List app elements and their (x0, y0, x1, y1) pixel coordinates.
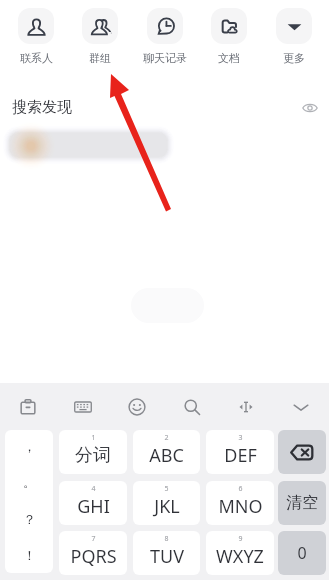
button[interactable]: 1 (59, 430, 127, 474)
staticText: JKL (154, 494, 180, 519)
button[interactable]: 4 (59, 481, 127, 525)
button[interactable]: 群组 (71, 8, 129, 65)
button[interactable]: 9 (206, 531, 274, 575)
button[interactable]: Backspace (278, 430, 326, 474)
button[interactable]: 清空 (278, 481, 326, 525)
staticText: ？ (23, 511, 36, 527)
staticText: WXYZ (216, 544, 264, 569)
staticText: 文档 (218, 51, 240, 65)
staticText: 4 (91, 484, 96, 494)
staticText: 3 (238, 433, 243, 443)
button[interactable]: 2 (133, 430, 200, 474)
button[interactable]: 6 (206, 481, 274, 525)
staticText: ABC (149, 443, 184, 468)
staticText: 7 (91, 534, 96, 544)
button[interactable]: Search (173, 388, 211, 426)
staticText: 联系人 (20, 51, 53, 65)
button[interactable]: Toggle search discovery (302, 100, 318, 116)
staticText: ， (23, 438, 36, 454)
staticText: 6 (238, 484, 243, 494)
button[interactable]: 文档 (200, 8, 258, 65)
button[interactable]: 3 (206, 430, 274, 474)
button[interactable]: 8 (133, 531, 200, 575)
staticText: 8 (164, 534, 169, 544)
staticText: 搜索发现 (12, 98, 72, 117)
staticText: TUV (150, 544, 184, 569)
staticText: 聊天记录 (143, 51, 187, 65)
staticText: 9 (238, 534, 243, 544)
staticText: PQRS (70, 544, 117, 569)
button[interactable]: Clipboard (9, 388, 47, 426)
staticText: GHI (77, 494, 110, 519)
staticText: 。 (23, 474, 36, 490)
button[interactable]: ， (5, 430, 53, 573)
staticText: 群组 (89, 51, 111, 65)
staticText: DEF (224, 443, 257, 468)
button[interactable]: Keyboard layout (64, 388, 102, 426)
button[interactable]: Move cursor (227, 388, 265, 426)
staticText: 更多 (283, 51, 305, 65)
button[interactable]: 0 (278, 531, 326, 575)
staticText: MNO (218, 494, 263, 519)
staticText: 1 (91, 433, 96, 443)
staticText: 2 (164, 433, 169, 443)
button[interactable]: 聊天记录 (136, 8, 194, 65)
staticText: 0 (297, 542, 307, 564)
button[interactable]: 联系人 (7, 8, 65, 65)
button[interactable]: 7 (59, 531, 127, 575)
button[interactable]: 5 (133, 481, 200, 525)
staticText: ！ (23, 547, 36, 563)
button[interactable]: 更多 (265, 8, 323, 65)
button[interactable]: Emoji (118, 388, 156, 426)
staticText: 5 (164, 484, 169, 494)
staticText: 分词 (75, 444, 111, 467)
button[interactable]: Hide keyboard (282, 388, 320, 426)
staticText: 清空 (286, 493, 318, 513)
